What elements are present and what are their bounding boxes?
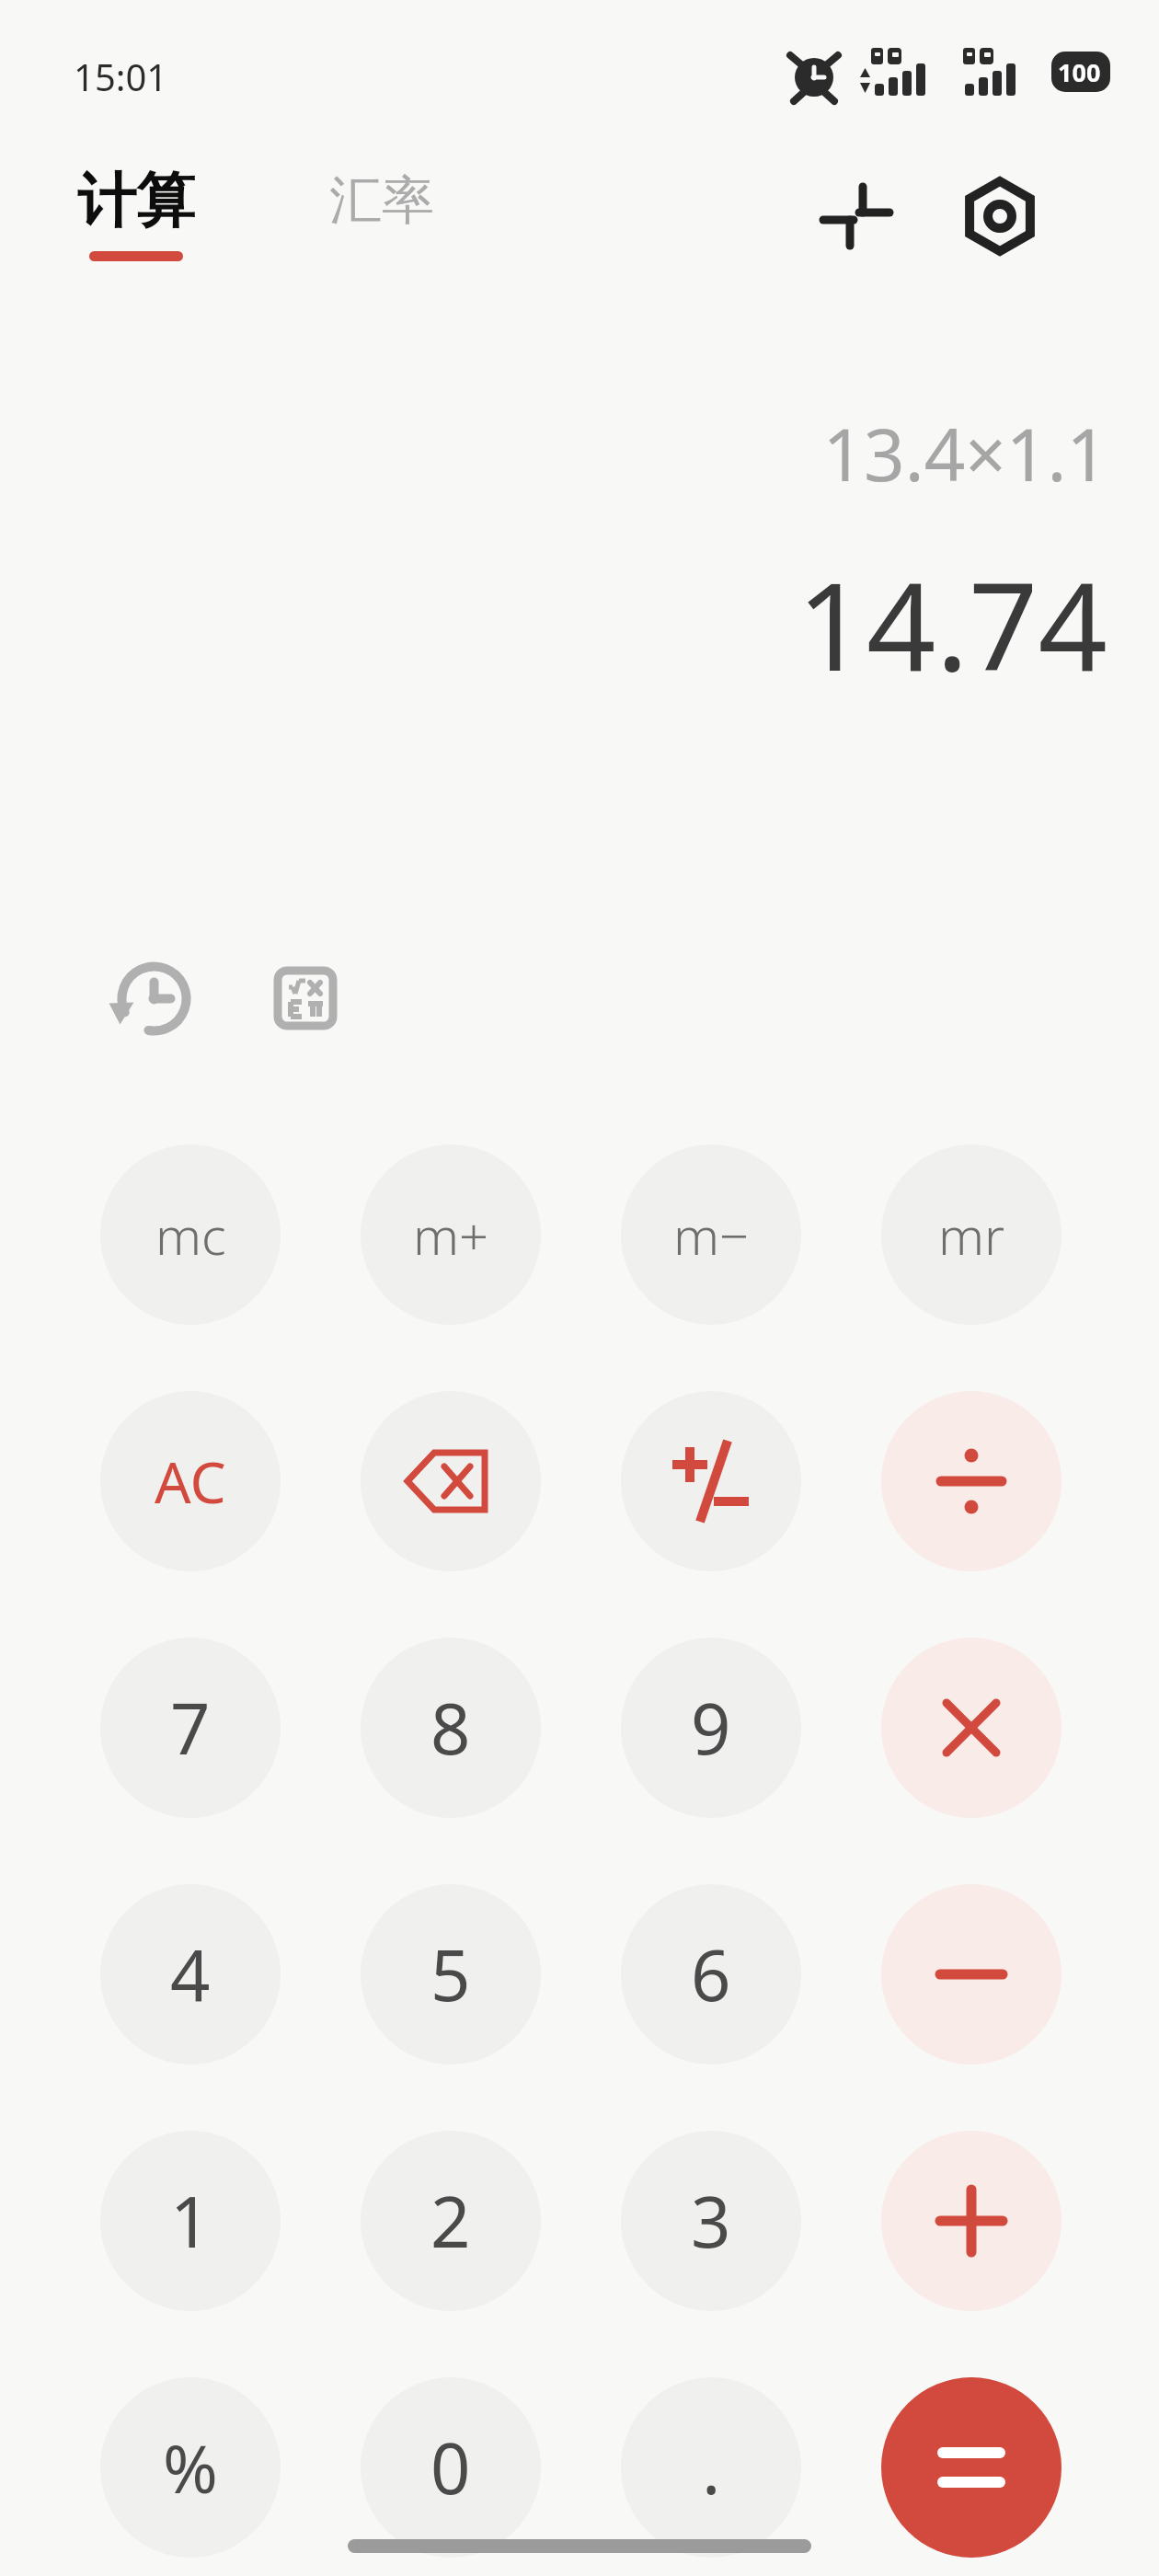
button[interactable]: Settings	[949, 166, 1050, 267]
button[interactable]: 计算	[77, 164, 195, 261]
button[interactable]: AC	[100, 1391, 281, 1571]
button[interactable]: 5	[361, 1884, 541, 2064]
button[interactable]: %	[100, 2377, 281, 2558]
button[interactable]: mc	[100, 1144, 281, 1325]
button[interactable]: Backspace	[361, 1391, 541, 1571]
button[interactable]: Divide	[881, 1391, 1061, 1571]
button[interactable]: 7	[100, 1638, 281, 1818]
button[interactable]: 0	[361, 2377, 541, 2558]
button[interactable]: 9	[621, 1638, 801, 1818]
button[interactable]: 1	[100, 2131, 281, 2311]
button[interactable]: mr	[881, 1144, 1061, 1325]
button[interactable]: 8	[361, 1638, 541, 1818]
button[interactable]: Equals	[881, 2377, 1061, 2558]
staticText: 0	[430, 2420, 471, 2515]
button[interactable]: Collapse	[808, 167, 905, 265]
button[interactable]: m+	[361, 1144, 541, 1325]
staticText: 13.4×1.1	[822, 405, 1107, 502]
button[interactable]: 4	[100, 1884, 281, 2064]
staticText: 7	[170, 1680, 211, 1776]
staticText: 9	[691, 1680, 731, 1776]
button[interactable]: 2	[361, 2131, 541, 2311]
button[interactable]: .	[621, 2377, 801, 2558]
staticText: 6	[691, 1926, 731, 2022]
button[interactable]: History	[97, 946, 202, 1052]
staticText: %	[163, 2422, 218, 2513]
staticText: 1	[170, 2173, 211, 2269]
button[interactable]: m−	[621, 1144, 801, 1325]
staticText: 8	[430, 1680, 471, 1776]
staticText: 5	[430, 1926, 471, 2022]
staticText: m−	[673, 1200, 749, 1270]
button[interactable]: 6	[621, 1884, 801, 2064]
staticText: mc	[155, 1200, 226, 1270]
button[interactable]: Multiply	[881, 1638, 1061, 1818]
button[interactable]: Toggle sign	[621, 1391, 801, 1571]
staticText: 汇率	[329, 167, 434, 234]
staticText: 100	[1058, 55, 1101, 89]
staticText: 2	[430, 2173, 471, 2269]
button[interactable]: Scientific mode	[259, 952, 351, 1044]
button[interactable]: Minus	[881, 1884, 1061, 2064]
button[interactable]: 汇率	[329, 167, 434, 234]
staticText: .	[702, 2420, 721, 2515]
staticText: 3	[691, 2173, 731, 2269]
staticText: AC	[155, 1443, 226, 1520]
staticText: 15:01	[74, 52, 168, 101]
staticText: m+	[413, 1200, 488, 1270]
staticText: 4	[170, 1926, 211, 2022]
staticText: 14.74	[797, 541, 1107, 707]
button[interactable]: Plus	[881, 2131, 1061, 2311]
staticText: 计算	[77, 164, 195, 238]
staticText: mr	[938, 1200, 1005, 1270]
button[interactable]: 3	[621, 2131, 801, 2311]
